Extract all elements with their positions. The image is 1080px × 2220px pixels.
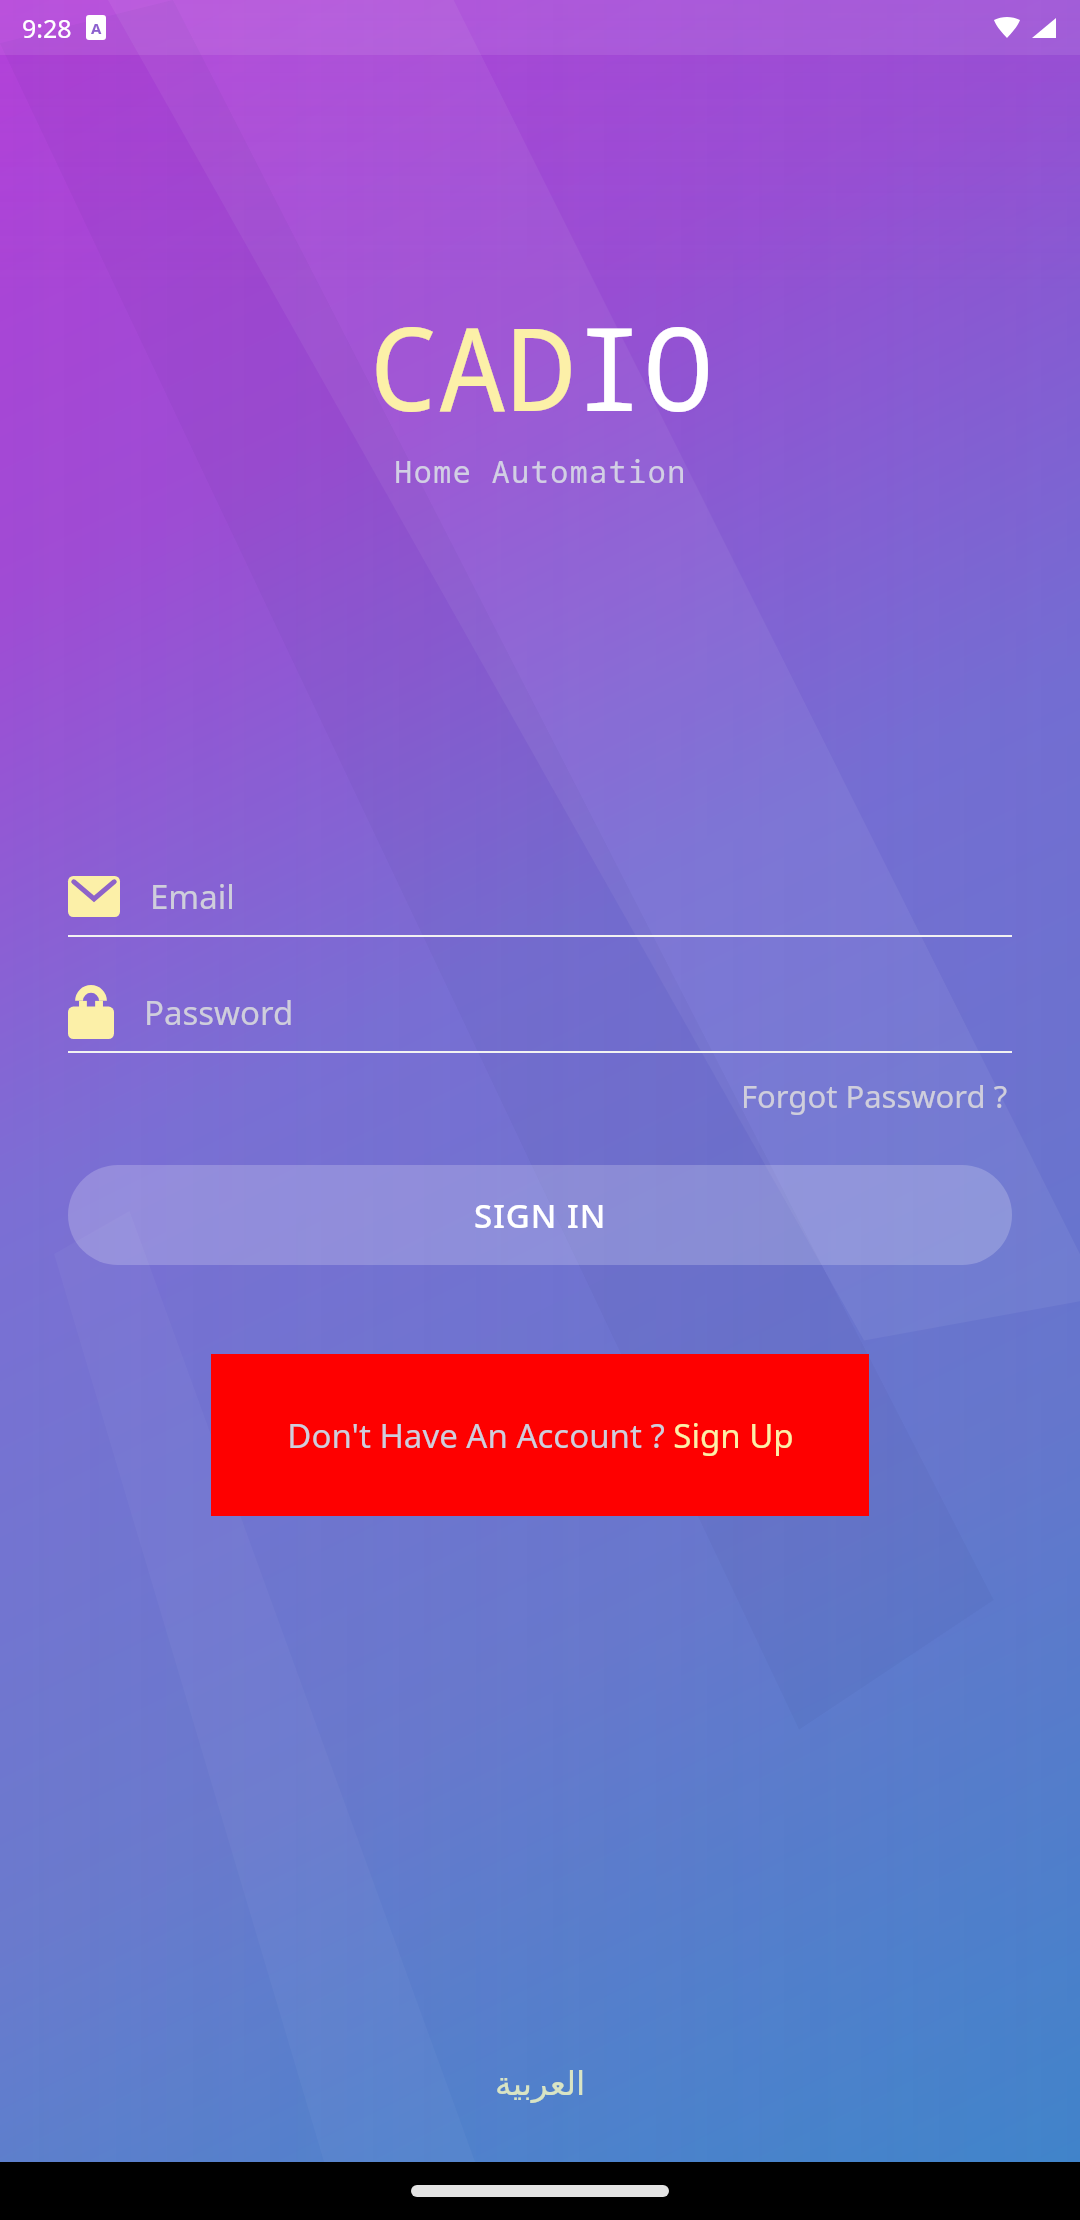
button[interactable]: العربية <box>481 2058 600 2108</box>
staticText: A <box>91 18 102 38</box>
staticText: Forgot Password ? <box>741 1075 1008 1117</box>
staticText: Email <box>150 874 235 919</box>
button[interactable]: SIGN IN <box>68 1165 1012 1265</box>
staticText: SIGN IN <box>474 1193 607 1238</box>
button[interactable]: Home <box>411 2185 669 2197</box>
staticText: 9:28 <box>22 11 72 45</box>
button[interactable]: Password <box>68 981 1012 1053</box>
button[interactable]: Email <box>68 865 1012 937</box>
staticText: العربية <box>495 2064 586 2102</box>
button[interactable]: Don't Have An Account ? Sign Up <box>236 1379 844 1491</box>
staticText: Don't Have An Account ? Sign Up <box>287 1413 794 1458</box>
button[interactable]: Forgot Password ? <box>737 1069 1012 1123</box>
staticText: Home Automation <box>394 451 687 492</box>
staticText: Password <box>144 990 294 1035</box>
staticText: CADIO <box>369 287 712 445</box>
